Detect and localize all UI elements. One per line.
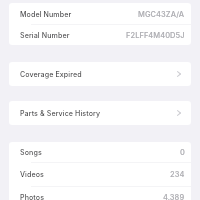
staticText: 4,389 [163, 193, 185, 200]
button[interactable]: Parts & Service History [9, 101, 191, 125]
button[interactable]: Model Number [9, 4, 191, 25]
staticText: Songs [20, 148, 42, 157]
button[interactable]: Videos [9, 162, 191, 186]
staticText: Model Number [20, 10, 72, 19]
other: Open [177, 110, 181, 116]
staticText: Videos [20, 170, 45, 179]
staticText: Coverage Expired [20, 70, 82, 79]
staticText: F2LFF4M40D5J [126, 31, 185, 40]
button[interactable]: Photos [9, 186, 191, 200]
staticText: MGC43ZA/A [138, 10, 185, 19]
staticText: 0 [180, 148, 185, 157]
staticText: Photos [20, 193, 45, 200]
button[interactable]: Serial Number [9, 25, 191, 45]
button[interactable]: Coverage Expired [9, 62, 191, 86]
staticText: 234 [170, 170, 185, 179]
staticText: Parts & Service History [20, 109, 101, 118]
other: Open [177, 71, 181, 77]
button[interactable]: Songs [9, 142, 191, 162]
staticText: Serial Number [20, 31, 70, 40]
